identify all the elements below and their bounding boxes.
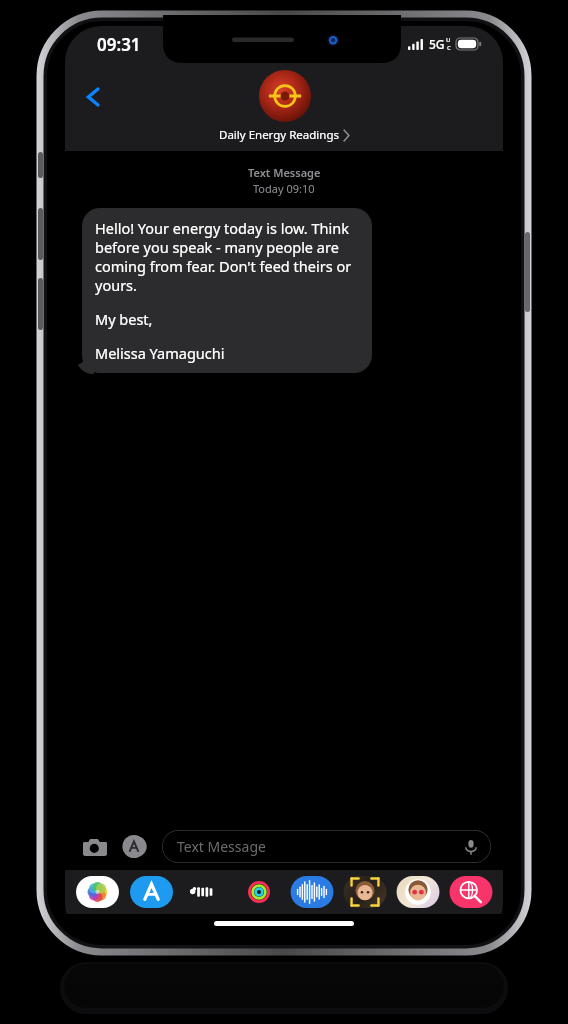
staticText: Text Message [177, 837, 266, 856]
button[interactable]: Fitness [236, 875, 282, 909]
button[interactable]: Back [73, 76, 115, 118]
button[interactable]: Apple Cash [182, 875, 229, 909]
staticText: U [446, 36, 451, 44]
button[interactable]: Audio [289, 875, 335, 909]
other: Dictate [463, 839, 479, 855]
staticText: Daily Energy Readings [219, 127, 340, 143]
button[interactable]: Memoji [342, 875, 388, 909]
button[interactable]: Camera [77, 828, 113, 864]
staticText: Melissa Yamaguchi [95, 343, 225, 363]
staticText: C [447, 44, 451, 52]
button[interactable]: Images [448, 875, 494, 909]
button[interactable]: Apps [120, 829, 154, 863]
button[interactable]: Photos [74, 875, 121, 909]
button[interactable]: Daily Energy Readings [219, 70, 350, 143]
staticText: My best, [95, 309, 153, 329]
staticText: Text Message [248, 165, 321, 180]
staticText: Today 09:10 [253, 181, 315, 196]
staticText: 5G [429, 36, 445, 52]
button[interactable]: App Store [128, 875, 175, 909]
button[interactable]: Text Message [162, 830, 491, 863]
button[interactable]: Photo Sticker [395, 875, 441, 909]
staticText: Hello! Your energy today is low. Think b… [95, 218, 359, 295]
staticText: 09:31 [97, 33, 141, 56]
button[interactable]: Hello! Your energy today is low. Think b… [82, 208, 372, 373]
